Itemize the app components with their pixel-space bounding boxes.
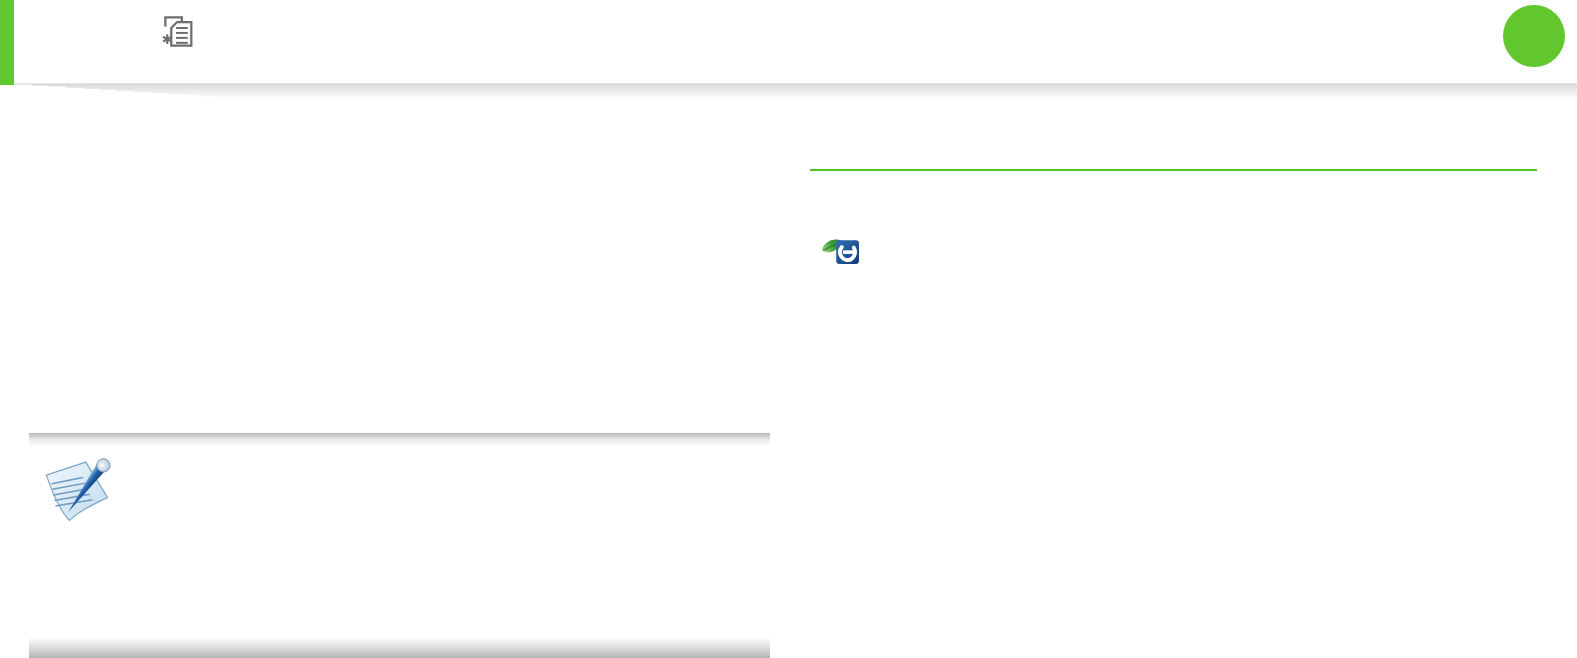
button[interactable]: Chapter badge: [1503, 5, 1565, 67]
button[interactable]: Note: [42, 456, 116, 524]
button[interactable]: Document options: [158, 10, 202, 52]
button[interactable]: Eco logo: [818, 234, 862, 267]
